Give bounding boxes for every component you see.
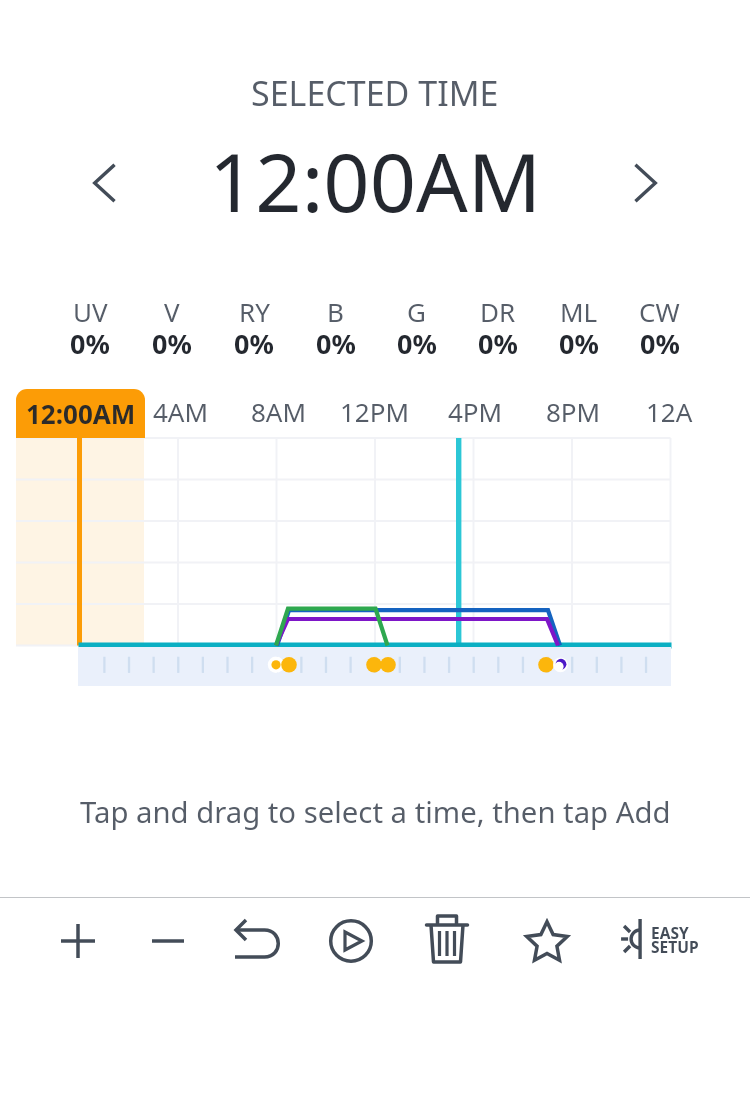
staticText: 8AM [251, 394, 307, 429]
staticText: G [407, 294, 426, 329]
staticText: RY [239, 294, 270, 329]
staticText: B [327, 294, 344, 329]
staticText: Tap and drag to select a time, then tap … [80, 792, 671, 832]
staticText: V [164, 294, 180, 329]
staticText: SETUP [651, 936, 699, 957]
staticText: UV [73, 294, 108, 329]
button[interactable]: Next time [604, 141, 688, 225]
button[interactable]: ML [538, 294, 619, 366]
staticText: SELECTED TIME [251, 70, 499, 114]
button[interactable]: Favorite [504, 898, 590, 984]
staticText: 8PM [546, 394, 601, 429]
button[interactable]: 12:00AM [16, 389, 145, 438]
staticText: DR [480, 294, 516, 329]
staticText: 0% [478, 325, 518, 362]
button[interactable]: G [376, 294, 457, 366]
button[interactable]: B [295, 294, 376, 366]
button[interactable]: Previous time [62, 141, 146, 225]
button[interactable]: Add [35, 898, 121, 984]
staticText: CW [639, 294, 680, 329]
staticText: 0% [559, 325, 599, 362]
button[interactable]: Easy setup [612, 903, 704, 979]
button[interactable]: DR [457, 294, 538, 366]
staticText: 0% [152, 325, 192, 362]
button[interactable]: Play [308, 898, 394, 984]
staticText: ML [560, 294, 598, 329]
button[interactable]: Remove [125, 898, 211, 984]
staticText: 0% [234, 325, 274, 362]
staticText: 4AM [153, 394, 209, 429]
staticText: 12PM [340, 394, 410, 429]
staticText: 12A [646, 394, 693, 429]
staticText: 0% [640, 325, 680, 362]
button[interactable]: UV [49, 294, 131, 366]
staticText: 0% [70, 325, 110, 362]
button[interactable]: Schedule timeline [78, 647, 671, 686]
button[interactable]: Delete [404, 898, 490, 984]
button[interactable]: Undo [214, 898, 300, 984]
staticText: 4PM [448, 394, 503, 429]
button[interactable]: CW [619, 294, 700, 366]
staticText: 12:00AM [26, 396, 136, 431]
staticText: 0% [316, 325, 356, 362]
button[interactable]: V [131, 294, 213, 366]
staticText: EASY [651, 922, 689, 943]
button[interactable]: RY [213, 294, 295, 366]
staticText: 12:00AM [209, 125, 542, 217]
staticText: 0% [397, 325, 437, 362]
